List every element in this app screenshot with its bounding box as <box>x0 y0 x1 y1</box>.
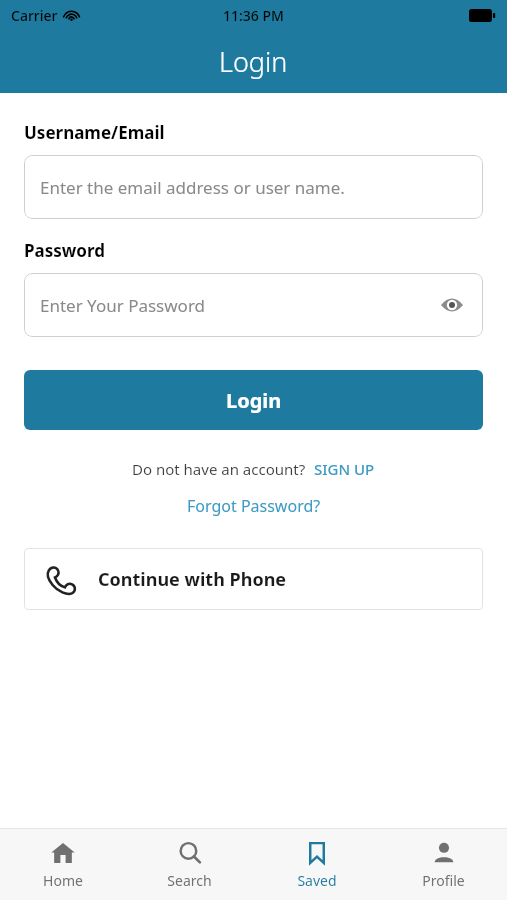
staticText: Password <box>24 239 105 262</box>
staticText: Forgot Password? <box>187 495 321 517</box>
staticText: Profile <box>422 871 465 890</box>
button[interactable]: Home <box>0 829 126 900</box>
button[interactable]: Saved <box>253 829 380 900</box>
staticText: Username/Email <box>24 121 165 144</box>
staticText: Do not have an account? <box>132 459 306 479</box>
staticText: SIGN UP <box>314 459 375 479</box>
button[interactable]: Profile <box>380 829 507 900</box>
button[interactable]: Forgot Password? <box>187 495 321 517</box>
button[interactable]: Search <box>126 829 253 900</box>
staticText: Enter the email address or user name. <box>40 176 345 199</box>
staticText: 11:36 PM <box>223 6 284 25</box>
staticText: Search <box>167 871 212 890</box>
staticText: Saved <box>297 871 337 890</box>
staticText: Carrier <box>11 6 58 25</box>
staticText: Home <box>43 871 83 890</box>
staticText: Continue with Phone <box>98 567 287 592</box>
button[interactable]: SIGN UP <box>314 459 375 479</box>
button[interactable]: Show password <box>437 290 467 320</box>
button[interactable]: Login <box>24 370 483 430</box>
button[interactable]: Continue with Phone <box>24 548 483 610</box>
staticText: Enter Your Password <box>40 294 206 317</box>
button[interactable]: Enter the email address or user name. <box>24 155 483 219</box>
staticText: Login <box>219 43 288 80</box>
staticText: Login <box>226 387 282 414</box>
button[interactable]: Enter Your Password <box>24 273 483 337</box>
